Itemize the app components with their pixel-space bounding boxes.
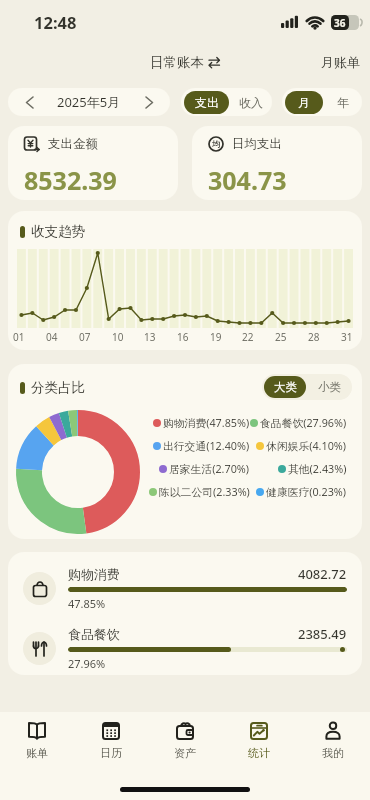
staticText: 2385.49 bbox=[298, 625, 347, 643]
staticText: 居家生活(2.70%) bbox=[169, 461, 250, 476]
staticText: 出行交通(12.40%) bbox=[163, 438, 250, 453]
staticText: 12:48 bbox=[34, 11, 77, 33]
staticText: 4082.72 bbox=[298, 565, 347, 583]
staticText: 2025年5月 bbox=[57, 93, 121, 111]
button[interactable]: 统计 bbox=[222, 720, 296, 760]
staticText: 16 bbox=[177, 330, 189, 344]
button[interactable]: 购物消费 bbox=[23, 565, 347, 611]
staticText: 8532.39 bbox=[24, 163, 117, 197]
button[interactable]: 食品餐饮 bbox=[23, 625, 347, 671]
button[interactable]: 我的 bbox=[296, 720, 370, 760]
staticText: 支出金额 bbox=[48, 136, 98, 152]
staticText: 日历 bbox=[100, 746, 122, 760]
button[interactable] bbox=[128, 88, 170, 116]
staticText: 购物消费(47.85%) bbox=[163, 415, 250, 430]
staticText: 日常账本 bbox=[150, 54, 204, 71]
button[interactable]: 均 bbox=[192, 126, 362, 200]
staticText: 我的 bbox=[322, 746, 344, 760]
button[interactable]: 月 bbox=[285, 91, 323, 114]
staticText: 收支趋势 bbox=[31, 223, 85, 240]
staticText: 食品餐饮 bbox=[68, 626, 120, 642]
button[interactable]: 大类 bbox=[264, 376, 306, 398]
staticText: 健康医疗(0.23%) bbox=[266, 484, 347, 499]
staticText: 01 bbox=[13, 330, 25, 344]
button[interactable]: 小类 bbox=[306, 374, 352, 400]
staticText: 28 bbox=[308, 330, 320, 344]
staticText: 购物消费 bbox=[68, 566, 120, 582]
staticText: 月 bbox=[298, 95, 310, 110]
staticText: 食品餐饮(27.96%) bbox=[260, 415, 347, 430]
button[interactable]: 月账单 bbox=[321, 54, 360, 70]
staticText: 04 bbox=[46, 330, 58, 344]
staticText: 分类占比 bbox=[31, 379, 85, 396]
staticText: 31 bbox=[341, 330, 353, 344]
staticText: 大类 bbox=[274, 380, 297, 394]
staticText: 休闲娱乐(4.10%) bbox=[266, 438, 347, 453]
staticText: 13 bbox=[144, 330, 156, 344]
button[interactable]: 年 bbox=[323, 88, 362, 116]
button[interactable]: 收入 bbox=[229, 88, 272, 116]
staticText: 27.96% bbox=[68, 656, 106, 671]
staticText: 均 bbox=[212, 139, 220, 149]
staticText: 22 bbox=[242, 330, 254, 344]
button[interactable]: 日历 bbox=[74, 720, 148, 760]
staticText: 其他(2.43%) bbox=[288, 461, 347, 476]
staticText: 07 bbox=[79, 330, 91, 344]
staticText: 日均支出 bbox=[232, 136, 282, 152]
staticText: 统计 bbox=[248, 746, 270, 760]
button[interactable]: 支出 bbox=[184, 91, 229, 114]
staticText: 年 bbox=[337, 95, 349, 110]
staticText: 资产 bbox=[174, 746, 196, 760]
staticText: 47.85% bbox=[68, 596, 106, 611]
button[interactable]: 支出金额 bbox=[8, 126, 178, 200]
staticText: 支出 bbox=[195, 95, 219, 110]
staticText: 陈以二公司(2.33%) bbox=[159, 484, 250, 499]
button[interactable]: 资产 bbox=[148, 720, 222, 760]
button[interactable]: 账单 bbox=[0, 720, 74, 760]
staticText: 收入 bbox=[239, 95, 263, 110]
staticText: 36 bbox=[334, 16, 346, 30]
button[interactable] bbox=[8, 88, 50, 116]
button[interactable]: 日常账本 bbox=[150, 54, 221, 71]
staticText: 25 bbox=[275, 330, 287, 344]
button[interactable]: 收支趋势 bbox=[8, 211, 362, 350]
staticText: 10 bbox=[112, 330, 124, 344]
staticText: 19 bbox=[210, 330, 222, 344]
staticText: 304.73 bbox=[208, 163, 287, 197]
staticText: 账单 bbox=[26, 746, 48, 760]
staticText: 小类 bbox=[318, 380, 341, 394]
